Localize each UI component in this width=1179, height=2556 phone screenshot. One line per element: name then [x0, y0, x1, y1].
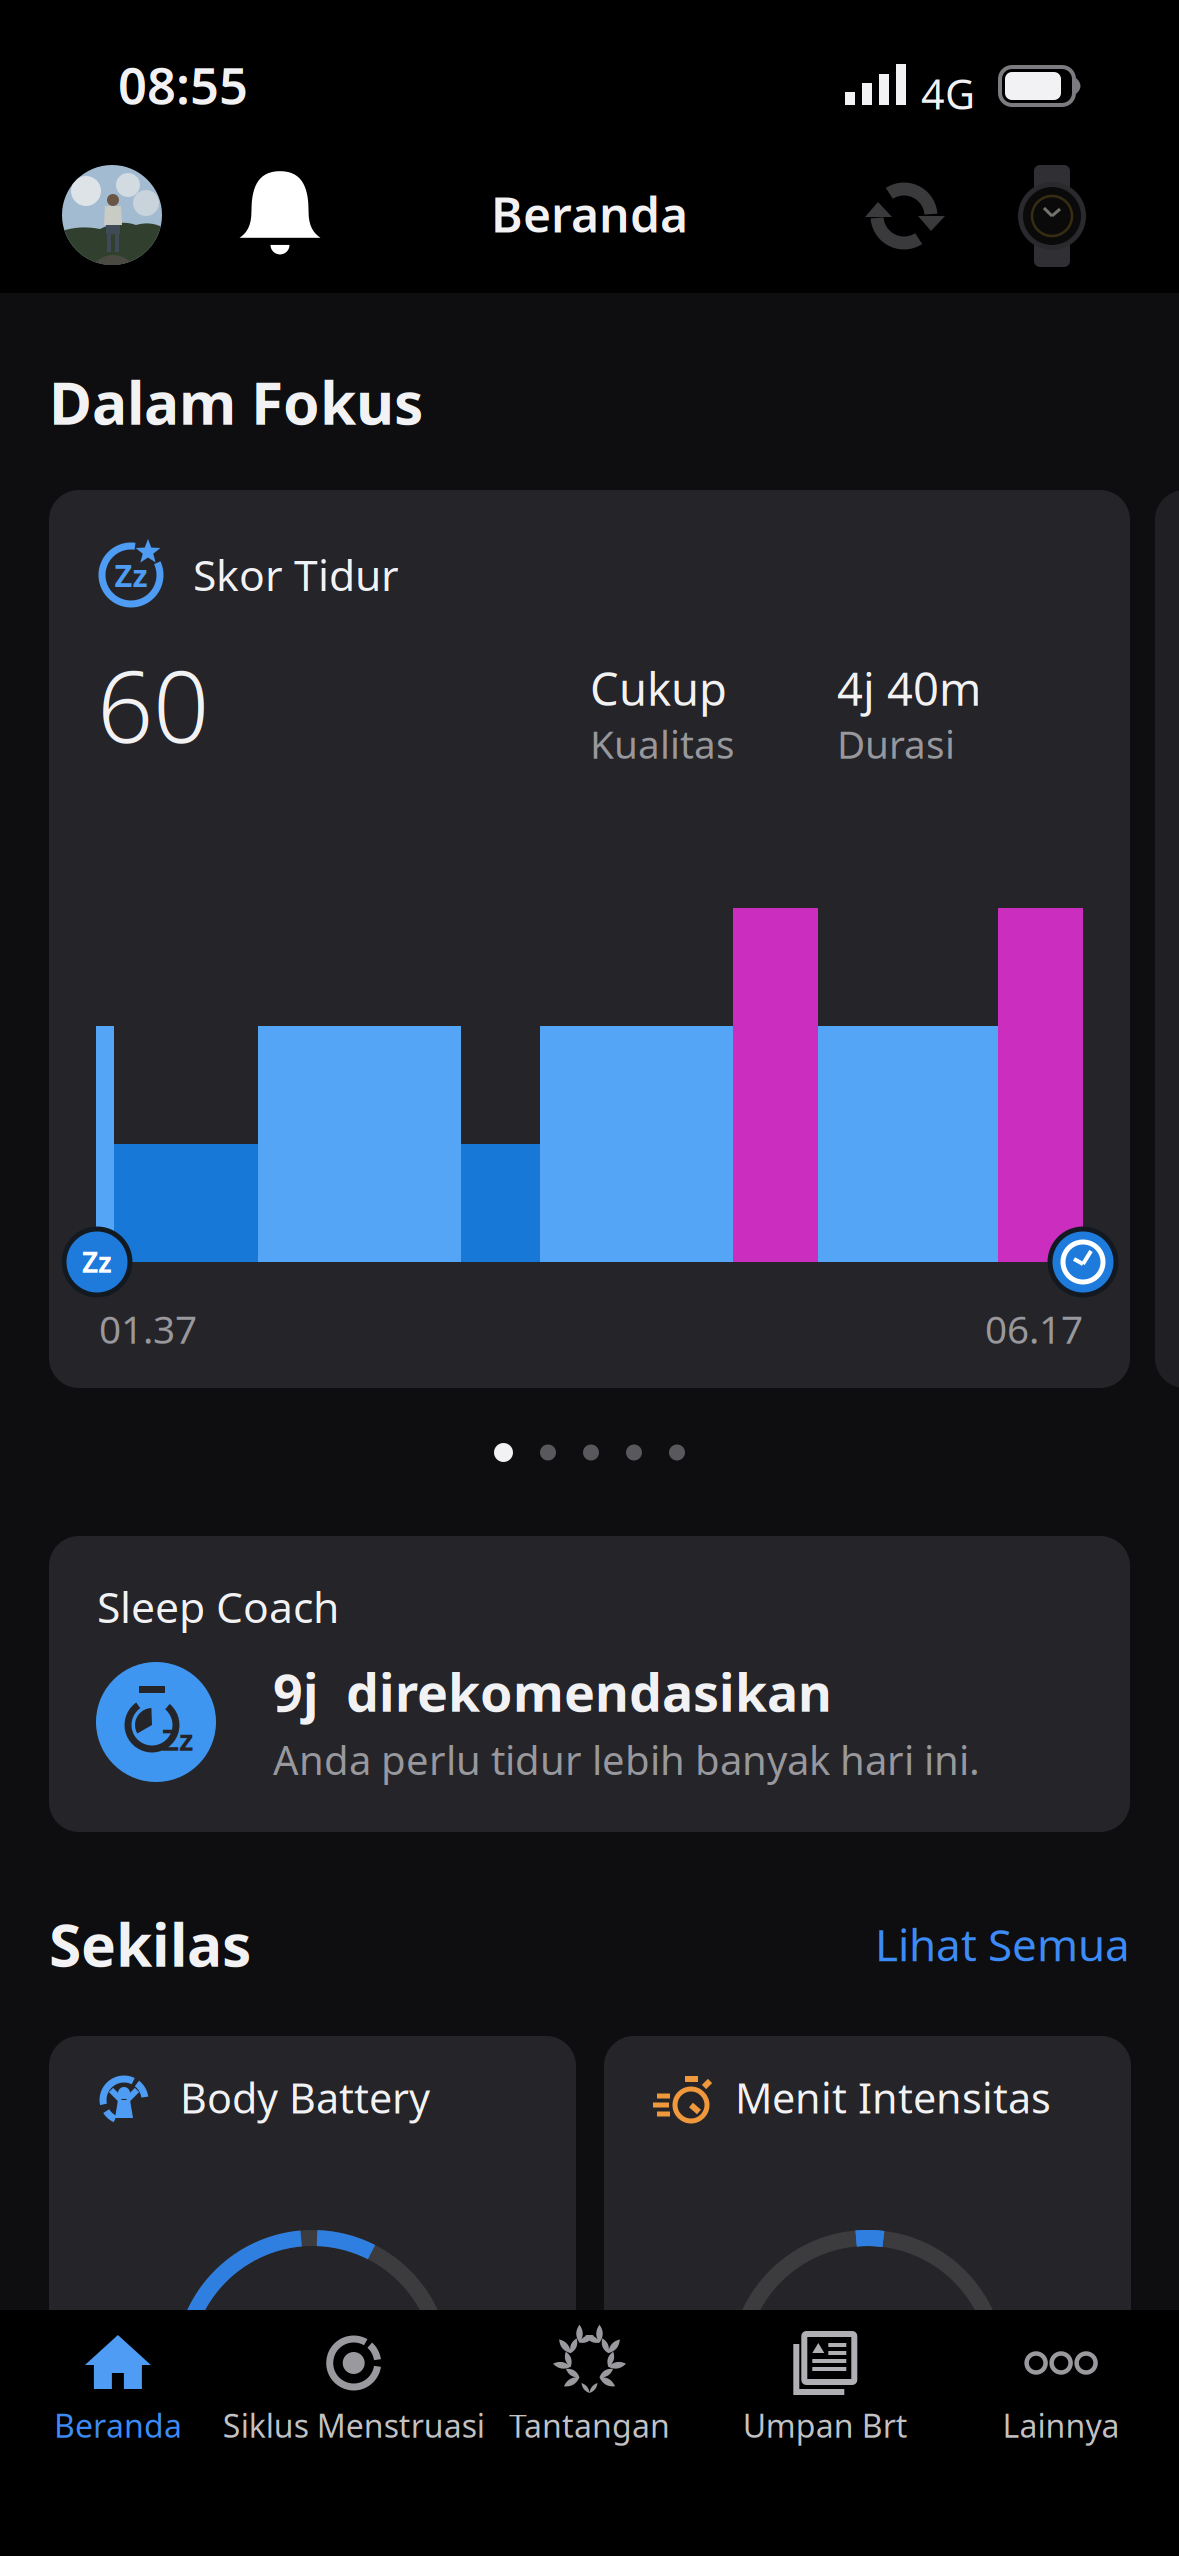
button[interactable]: Lihat Semua: [875, 1915, 1130, 1973]
staticText: Durasi: [837, 718, 955, 769]
staticText: Beranda: [54, 2404, 182, 2446]
staticText: Zz: [162, 1720, 193, 1759]
button[interactable]: Siklus Menstruasi: [236, 2334, 472, 2446]
staticText: Cukup: [590, 658, 727, 718]
staticText: Siklus Menstruasi: [223, 2404, 485, 2446]
staticText: Dalam Fokus: [49, 363, 423, 441]
button[interactable]: [1018, 165, 1086, 267]
staticText: Tantangan: [509, 2404, 670, 2446]
staticText: 60: [97, 639, 209, 770]
button[interactable]: Sleep Coach: [49, 1536, 1130, 1832]
button[interactable]: Umpan Brt: [707, 2334, 943, 2446]
staticText: Sekilas: [49, 1905, 251, 1983]
button[interactable]: Lainnya: [943, 2334, 1179, 2446]
button[interactable]: Zz: [49, 490, 1130, 1388]
staticText: 08:55: [118, 51, 248, 118]
staticText: Beranda: [491, 182, 688, 246]
staticText: Lihat Semua: [875, 1915, 1130, 1973]
staticText: 4j 40m: [837, 658, 981, 718]
staticText: 9j direkomendasikan: [273, 1657, 832, 1726]
staticText: Zz: [82, 1243, 112, 1281]
staticText: Umpan Brt: [743, 2404, 908, 2446]
staticText: Anda perlu tidur lebih banyak hari ini.: [273, 1733, 980, 1786]
staticText: Skor Tidur: [193, 546, 399, 603]
staticText: 06.17: [985, 1303, 1083, 1354]
staticText: Kualitas: [590, 718, 735, 769]
staticText: Zz: [114, 555, 147, 595]
button[interactable]: Menit Intensitas: [604, 2036, 1131, 2556]
staticText: Sleep Coach: [97, 1578, 339, 1635]
button[interactable]: Beranda: [0, 2334, 236, 2446]
staticText: Lainnya: [1003, 2404, 1120, 2446]
button[interactable]: [230, 164, 330, 264]
staticText: 4G: [921, 66, 975, 121]
staticText: Menit Intensitas: [735, 2070, 1051, 2125]
button[interactable]: [62, 165, 162, 265]
button[interactable]: Tantangan: [472, 2334, 707, 2446]
button[interactable]: [865, 177, 945, 255]
staticText: 01.37: [99, 1303, 197, 1354]
button[interactable]: Body Battery: [49, 2036, 576, 2556]
staticText: Body Battery: [180, 2070, 430, 2125]
